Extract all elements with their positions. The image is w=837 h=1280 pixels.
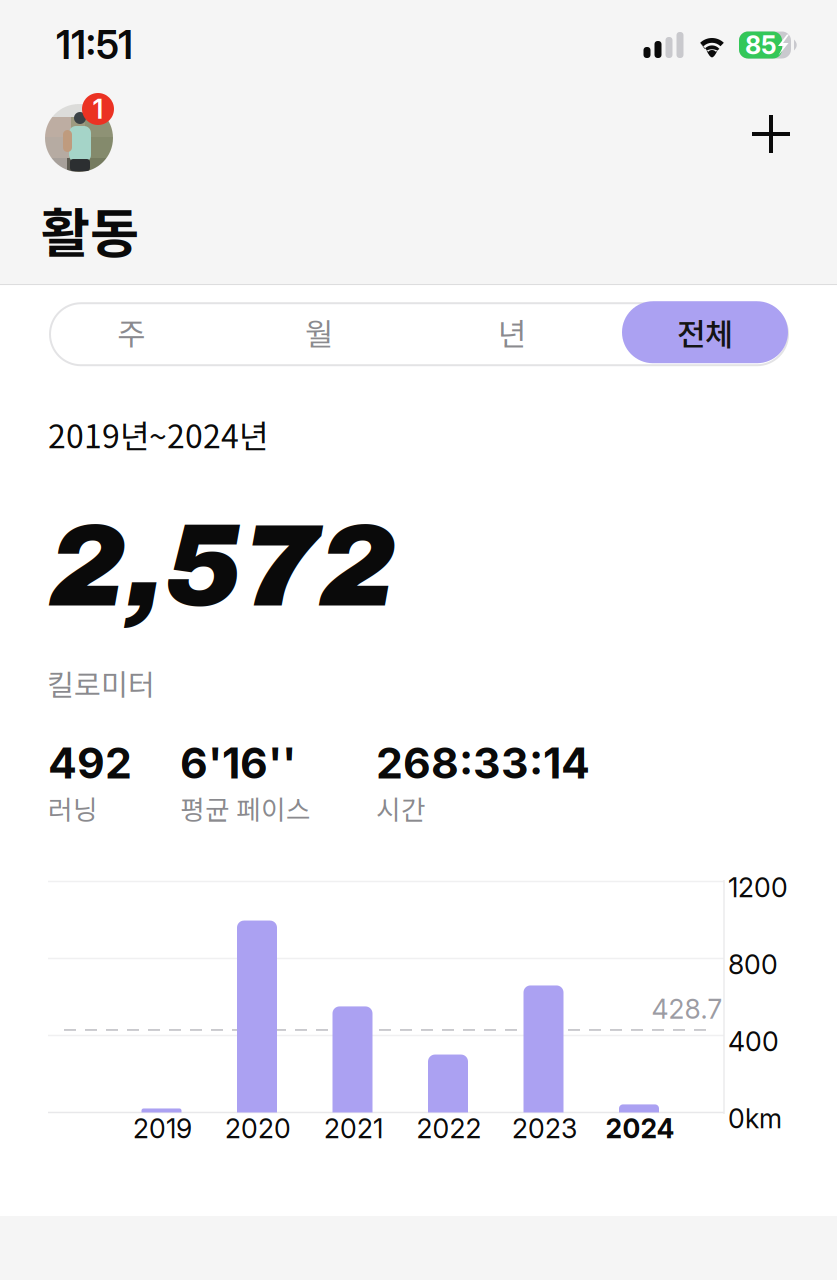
staticText: 1: [92, 93, 103, 125]
button[interactable]: Add: [745, 108, 797, 160]
staticText: 2019년~2024년: [48, 411, 268, 457]
button[interactable]: 년: [452, 301, 572, 363]
staticText: 러닝: [48, 789, 98, 827]
staticText: 1200: [728, 871, 788, 904]
staticText: 전체: [677, 310, 733, 354]
staticText: 킬로미터: [47, 662, 155, 704]
staticText: 2020: [225, 1112, 291, 1145]
staticText: 2,572: [49, 504, 396, 630]
staticText: 268:33:14: [376, 737, 590, 789]
staticText: 월: [305, 310, 333, 354]
staticText: 시간: [376, 789, 426, 827]
staticText: 6'16'': [180, 737, 296, 789]
staticText: 2019: [133, 1112, 192, 1145]
staticText: 0km: [728, 1102, 782, 1135]
button[interactable]: 월: [259, 301, 379, 363]
staticText: 400: [728, 1025, 779, 1058]
staticText: 2024: [605, 1112, 674, 1145]
staticText: 11:51: [56, 22, 133, 68]
staticText: 평균 페이스: [180, 789, 311, 827]
button[interactable]: 전체: [622, 301, 788, 363]
button[interactable]: Profile: [45, 104, 114, 172]
staticText: 492: [48, 737, 132, 789]
staticText: 활동: [41, 191, 139, 268]
staticText: 주: [117, 310, 145, 354]
staticText: 2022: [416, 1112, 481, 1145]
button[interactable]: 주: [71, 301, 191, 363]
staticText: 년: [498, 310, 526, 354]
staticText: 428.7: [651, 993, 722, 1025]
staticText: 85: [745, 30, 777, 60]
staticText: 2023: [512, 1112, 577, 1145]
staticText: 800: [728, 948, 778, 981]
staticText: 2021: [324, 1112, 383, 1145]
